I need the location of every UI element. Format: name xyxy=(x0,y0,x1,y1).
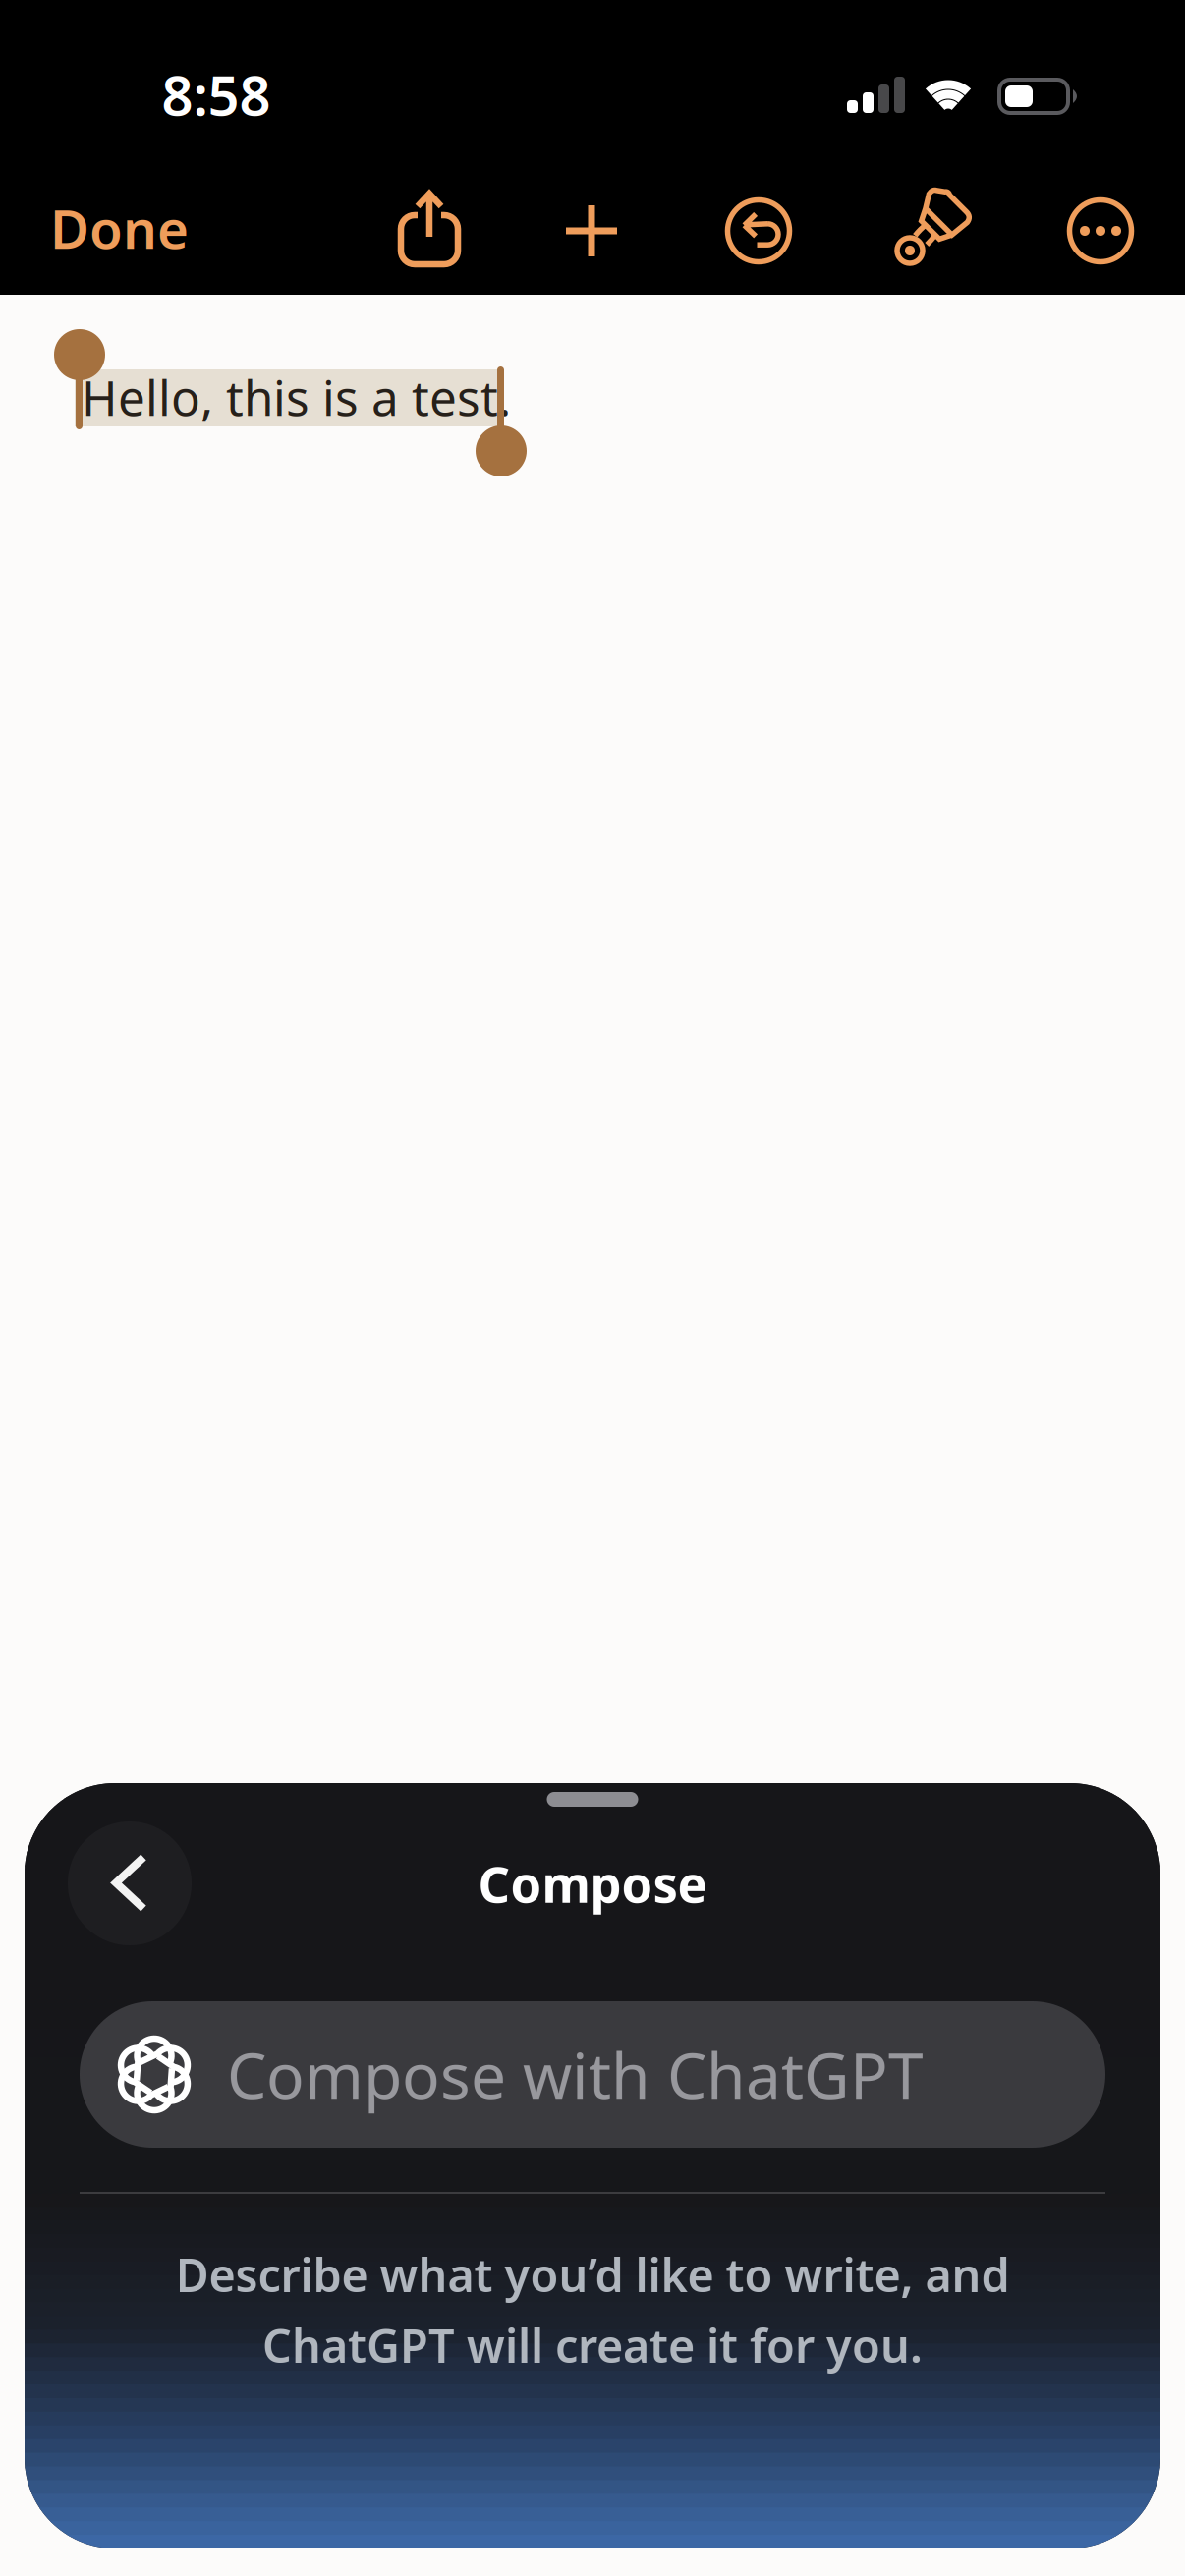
staticText: Compose xyxy=(478,1850,707,1916)
button[interactable]: Back xyxy=(68,1821,192,1945)
staticText: ChatGPT will create it for you. xyxy=(262,2315,923,2376)
staticText: Hello, this is a test. xyxy=(82,365,511,429)
button[interactable]: Share xyxy=(385,185,474,273)
staticText: Done xyxy=(50,192,189,264)
button[interactable]: Add xyxy=(547,187,636,275)
staticText: Describe what you’d like to write, and xyxy=(175,2244,1010,2305)
button[interactable]: Undo xyxy=(714,187,803,275)
staticText: Compose with ChatGPT xyxy=(227,2033,924,2116)
staticText: 8:58 xyxy=(162,58,271,131)
button[interactable]: Compose with ChatGPT xyxy=(80,2001,1105,2148)
button[interactable]: Markup xyxy=(885,187,974,275)
button[interactable]: Done xyxy=(50,189,189,267)
button[interactable]: More xyxy=(1056,187,1145,275)
